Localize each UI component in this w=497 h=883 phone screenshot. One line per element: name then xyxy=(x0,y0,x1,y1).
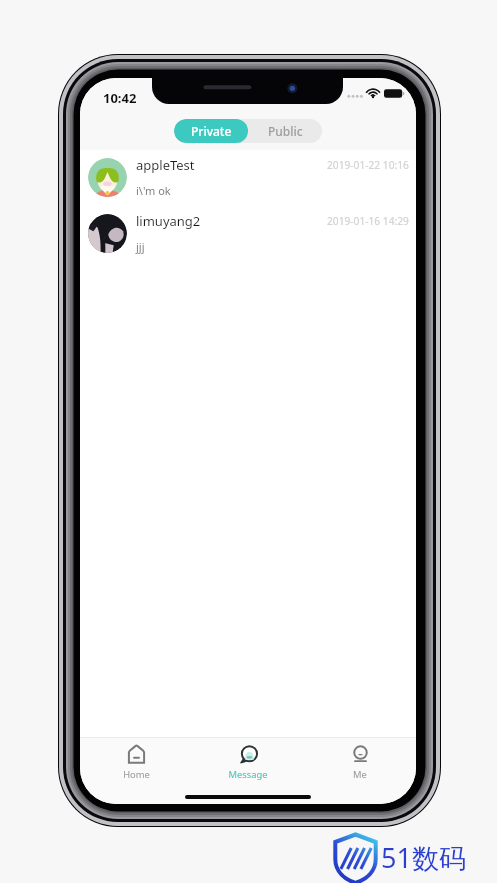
staticText: jjj xyxy=(136,239,145,254)
button[interactable]: Home xyxy=(80,738,192,782)
staticText: Public xyxy=(268,123,303,139)
staticText: 2019-01-22 10:16 xyxy=(327,158,409,172)
staticText: 2019-01-16 14:29 xyxy=(327,214,409,228)
button[interactable]: Public xyxy=(248,119,322,143)
staticText: Me xyxy=(353,768,367,781)
staticText: limuyang2 xyxy=(136,212,327,230)
button[interactable]: appleTest xyxy=(80,150,416,206)
button[interactable]: Me xyxy=(304,738,416,782)
button[interactable]: limuyang2 xyxy=(80,206,416,262)
staticText: i\'m ok xyxy=(136,183,171,198)
staticText: appleTest xyxy=(136,156,327,174)
staticText: Private xyxy=(191,123,232,139)
button[interactable]: Message xyxy=(192,738,304,782)
staticText: Home xyxy=(123,768,150,781)
button[interactable]: Private xyxy=(174,119,248,143)
staticText: Message xyxy=(228,768,268,781)
staticText: 10:42 xyxy=(103,89,137,104)
staticText: 51数码 xyxy=(381,839,466,876)
